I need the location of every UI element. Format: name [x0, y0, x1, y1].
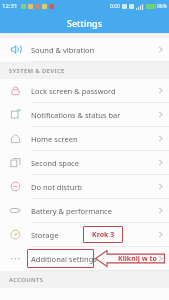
- button[interactable]: Home screen: [0, 127, 169, 151]
- button[interactable]: Storage: [0, 223, 169, 247]
- staticText: Notifications & status bar: [31, 110, 121, 120]
- other: Open Notifications & status bar: [152, 110, 169, 119]
- other: Open Home screen: [152, 134, 169, 143]
- staticText: ACCOUNTS: [9, 276, 44, 284]
- staticText: Home screen: [31, 134, 78, 144]
- other: Open Battery & performance: [152, 206, 169, 215]
- button[interactable]: Additional settings: [0, 247, 169, 271]
- button[interactable]: Sound & vibration: [0, 38, 169, 62]
- staticText: SYSTEM & DEVICE: [9, 67, 65, 75]
- staticText: 12:31: [2, 2, 18, 10]
- other: Open Sound & vibration: [152, 45, 169, 54]
- other: Open Lock screen & password: [152, 86, 169, 95]
- staticText: 96%: [157, 3, 167, 10]
- button[interactable]: Lock screen & password: [0, 79, 169, 103]
- other: Open Additional settings: [152, 254, 169, 263]
- button[interactable]: Second space: [0, 151, 169, 175]
- staticText: Krok 3: [92, 230, 115, 240]
- staticText: Do not disturb: [31, 182, 82, 192]
- button[interactable]: Battery & performance: [0, 199, 169, 223]
- button[interactable]: Do not disturb: [0, 175, 169, 199]
- other: Open Second space: [152, 158, 169, 167]
- staticText: Additional settings: [31, 254, 97, 264]
- staticText: 0:00: [110, 3, 120, 10]
- button[interactable]: Notifications & status bar: [0, 103, 169, 127]
- staticText: Settings: [67, 17, 103, 29]
- staticText: Kliknij w to: [118, 254, 157, 264]
- other: Open Do not disturb: [152, 182, 169, 191]
- staticText: Storage: [31, 230, 59, 240]
- staticText: Lock screen & password: [31, 86, 116, 96]
- staticText: Second space: [31, 158, 79, 168]
- staticText: Battery & performance: [31, 206, 112, 216]
- other: Open Storage: [152, 230, 169, 239]
- staticText: Sound & vibration: [31, 45, 95, 55]
